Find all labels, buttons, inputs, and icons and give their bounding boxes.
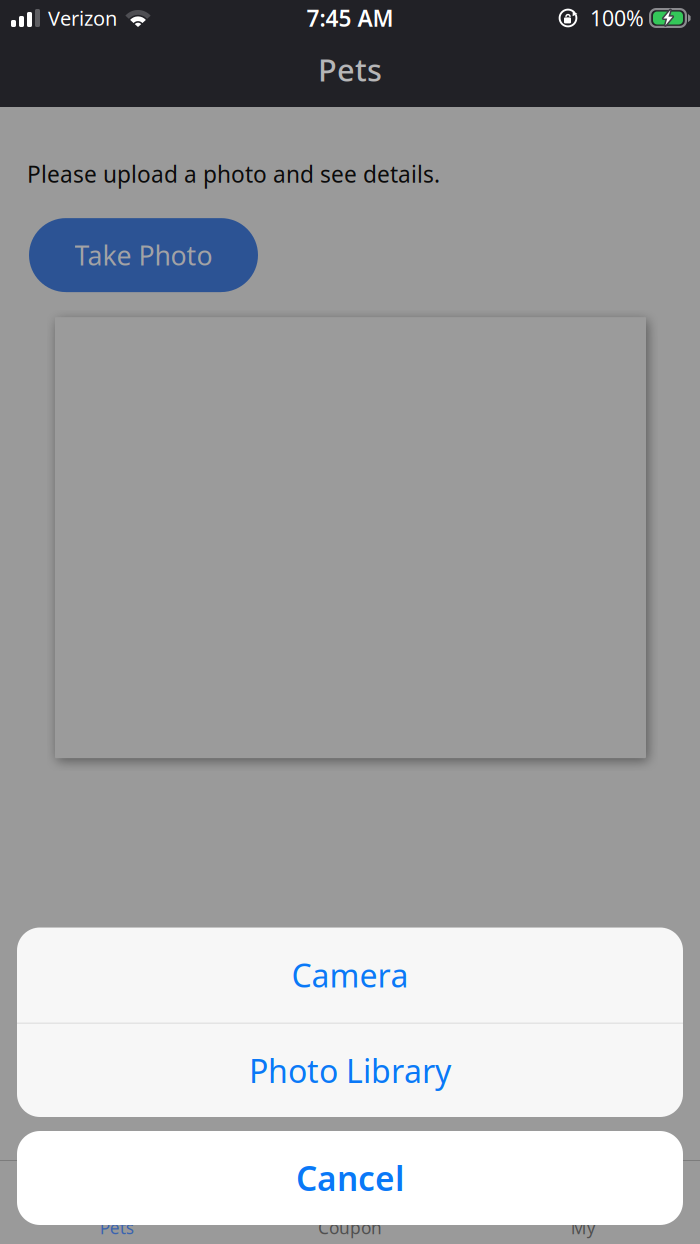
button[interactable]: Cancel [17, 1131, 683, 1225]
button[interactable]: Pets [0, 1161, 233, 1244]
staticText: 100% [590, 4, 644, 32]
staticText: Camera [291, 954, 408, 996]
staticText: Pets [100, 1216, 134, 1239]
staticText: My [571, 1216, 596, 1239]
button[interactable]: Camera [17, 927, 683, 1022]
button[interactable]: Coupon [233, 1161, 467, 1244]
staticText: 7:45 AM [306, 3, 393, 33]
button[interactable]: Photo Library [17, 1024, 683, 1117]
staticText: Photo Library [249, 1049, 451, 1092]
staticText: Verizon [48, 5, 117, 31]
staticText: Please upload a photo and see details. [27, 159, 440, 189]
button[interactable]: Take Photo [29, 218, 258, 292]
staticText: Cancel [296, 1156, 404, 1200]
staticText: Pets [318, 49, 382, 90]
button[interactable]: My [467, 1161, 700, 1244]
staticText: Coupon [318, 1216, 382, 1239]
staticText: Take Photo [74, 237, 212, 273]
